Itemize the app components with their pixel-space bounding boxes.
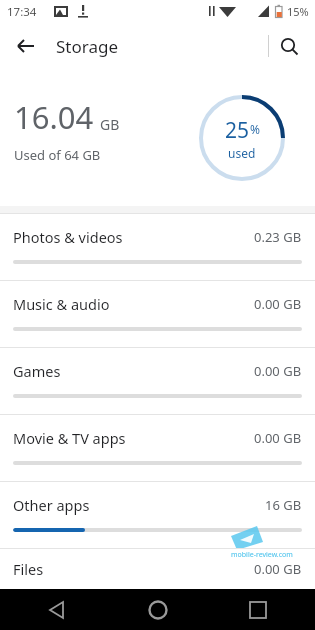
staticText: 25 — [225, 116, 250, 145]
staticText: 0.00 GB — [254, 429, 302, 447]
staticText: mobile-review.com — [231, 550, 293, 560]
staticText: 17:34 — [7, 4, 37, 20]
button[interactable]: Games — [0, 348, 315, 414]
staticText: 0.00 GB — [254, 362, 302, 380]
staticText: % — [250, 121, 260, 137]
staticText: 0.23 GB — [254, 228, 302, 246]
staticText: used — [228, 145, 256, 161]
staticText: GB — [100, 115, 120, 134]
button[interactable]: Photos & videos — [0, 214, 315, 280]
staticText: Used of 64 GB — [14, 146, 101, 164]
staticText: 16.04 — [14, 96, 94, 138]
staticText: Movie & TV apps — [13, 428, 126, 448]
staticText: Files — [13, 559, 44, 579]
button[interactable]: Back — [6, 26, 46, 66]
staticText: Storage — [56, 35, 119, 58]
button[interactable]: Files — [0, 549, 315, 589]
button[interactable]: Recents — [241, 593, 275, 627]
staticText: Music & audio — [13, 294, 110, 314]
staticText: 16 GB — [265, 496, 302, 514]
staticText: Photos & videos — [13, 227, 123, 247]
staticText: Games — [13, 361, 61, 381]
staticText: Other apps — [13, 495, 90, 515]
button[interactable]: Music & audio — [0, 281, 315, 347]
staticText: 15% — [287, 4, 309, 19]
button[interactable]: Home — [141, 593, 175, 627]
button[interactable]: Other apps — [0, 482, 315, 548]
button[interactable]: Back — [40, 593, 74, 627]
staticText: 0.00 GB — [254, 295, 302, 313]
button[interactable]: Search — [269, 26, 309, 66]
staticText: 0.00 GB — [254, 560, 302, 578]
button[interactable]: Movie & TV apps — [0, 415, 315, 481]
